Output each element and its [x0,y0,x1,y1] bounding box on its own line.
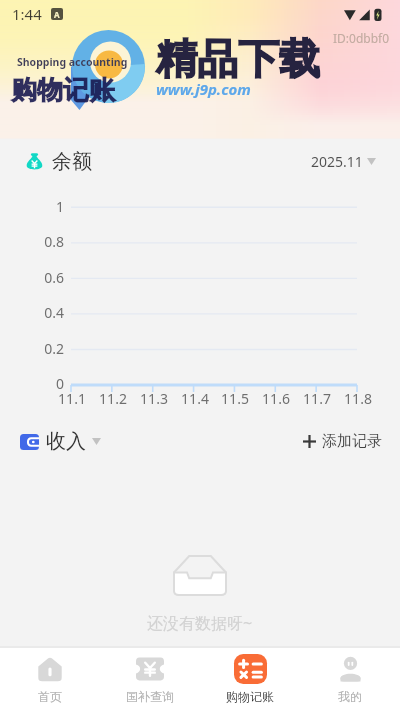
staticText: 我的 [338,689,362,704]
staticText: 1 [0,197,64,216]
staticText: 购物记账 [226,689,274,704]
button[interactable]: 添加记录 [301,428,384,455]
staticText: 11.6 [256,389,296,408]
staticText: 11.4 [175,389,215,408]
staticText: ID:0dbbf0 [333,30,390,46]
staticText: 0.4 [0,303,64,322]
staticText: A [54,9,60,20]
button[interactable]: 2025.11 [307,148,380,175]
staticText: 添加记录 [322,432,382,451]
staticText: 11.3 [134,389,174,408]
button[interactable]: 首页 [0,648,100,712]
staticText: 余额 [52,149,92,174]
staticText: 收入 [46,429,86,454]
staticText: www.j9p.com [156,79,251,99]
staticText: 购物记账 [11,74,115,107]
staticText: 11.2 [93,389,133,408]
staticText: 国补查询 [126,689,174,704]
button[interactable]: 我的 [300,648,400,712]
staticText: 2025.11 [311,152,363,171]
staticText: 0.2 [0,339,64,358]
button[interactable]: 购物记账 [200,648,300,712]
staticText: 首页 [38,689,62,704]
staticText: 1:44 [12,4,42,24]
staticText: 11.1 [52,389,92,408]
staticText: 11.7 [297,389,337,408]
staticText: Shopping accounting [17,55,128,69]
staticText: 11.8 [338,389,378,408]
staticText: 还没有数据呀~ [147,612,253,634]
staticText: 0.8 [0,232,64,251]
staticText: 11.5 [215,389,255,408]
button[interactable]: 国补查询 [100,648,200,712]
button[interactable]: 收入 [20,425,101,458]
staticText: 0 [0,374,64,393]
staticText: 精品下载 [156,34,320,86]
staticText: 0.6 [0,268,64,287]
